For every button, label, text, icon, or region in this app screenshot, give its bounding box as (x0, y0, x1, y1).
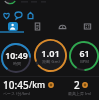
staticText: 時間 (13, 61, 21, 66)
button[interactable]: Like (0, 9, 12, 21)
button[interactable]: Comment (12, 9, 24, 21)
staticText: 距離 (km) (42, 59, 60, 64)
button[interactable]: Clubs (50, 21, 75, 31)
staticText: 10:45 (3, 78, 29, 92)
button[interactable]: Activity (25, 21, 50, 31)
staticText: ペース (分/km) (3, 91, 30, 96)
staticText: 2 (74, 78, 80, 92)
button[interactable]: 2 (66, 77, 94, 98)
staticText: 10:49 (5, 50, 28, 62)
button[interactable]: 10:45 (1, 77, 54, 98)
button[interactable]: Home (0, 21, 25, 31)
button[interactable]: Profile (75, 21, 99, 31)
button[interactable]: Share (24, 9, 36, 21)
staticText: 61 (79, 48, 90, 60)
staticText: 1.01 (41, 47, 60, 60)
staticText: /km (29, 79, 46, 91)
staticText: 最高上昇 (m) (68, 91, 92, 96)
staticText: BPM (80, 59, 89, 64)
